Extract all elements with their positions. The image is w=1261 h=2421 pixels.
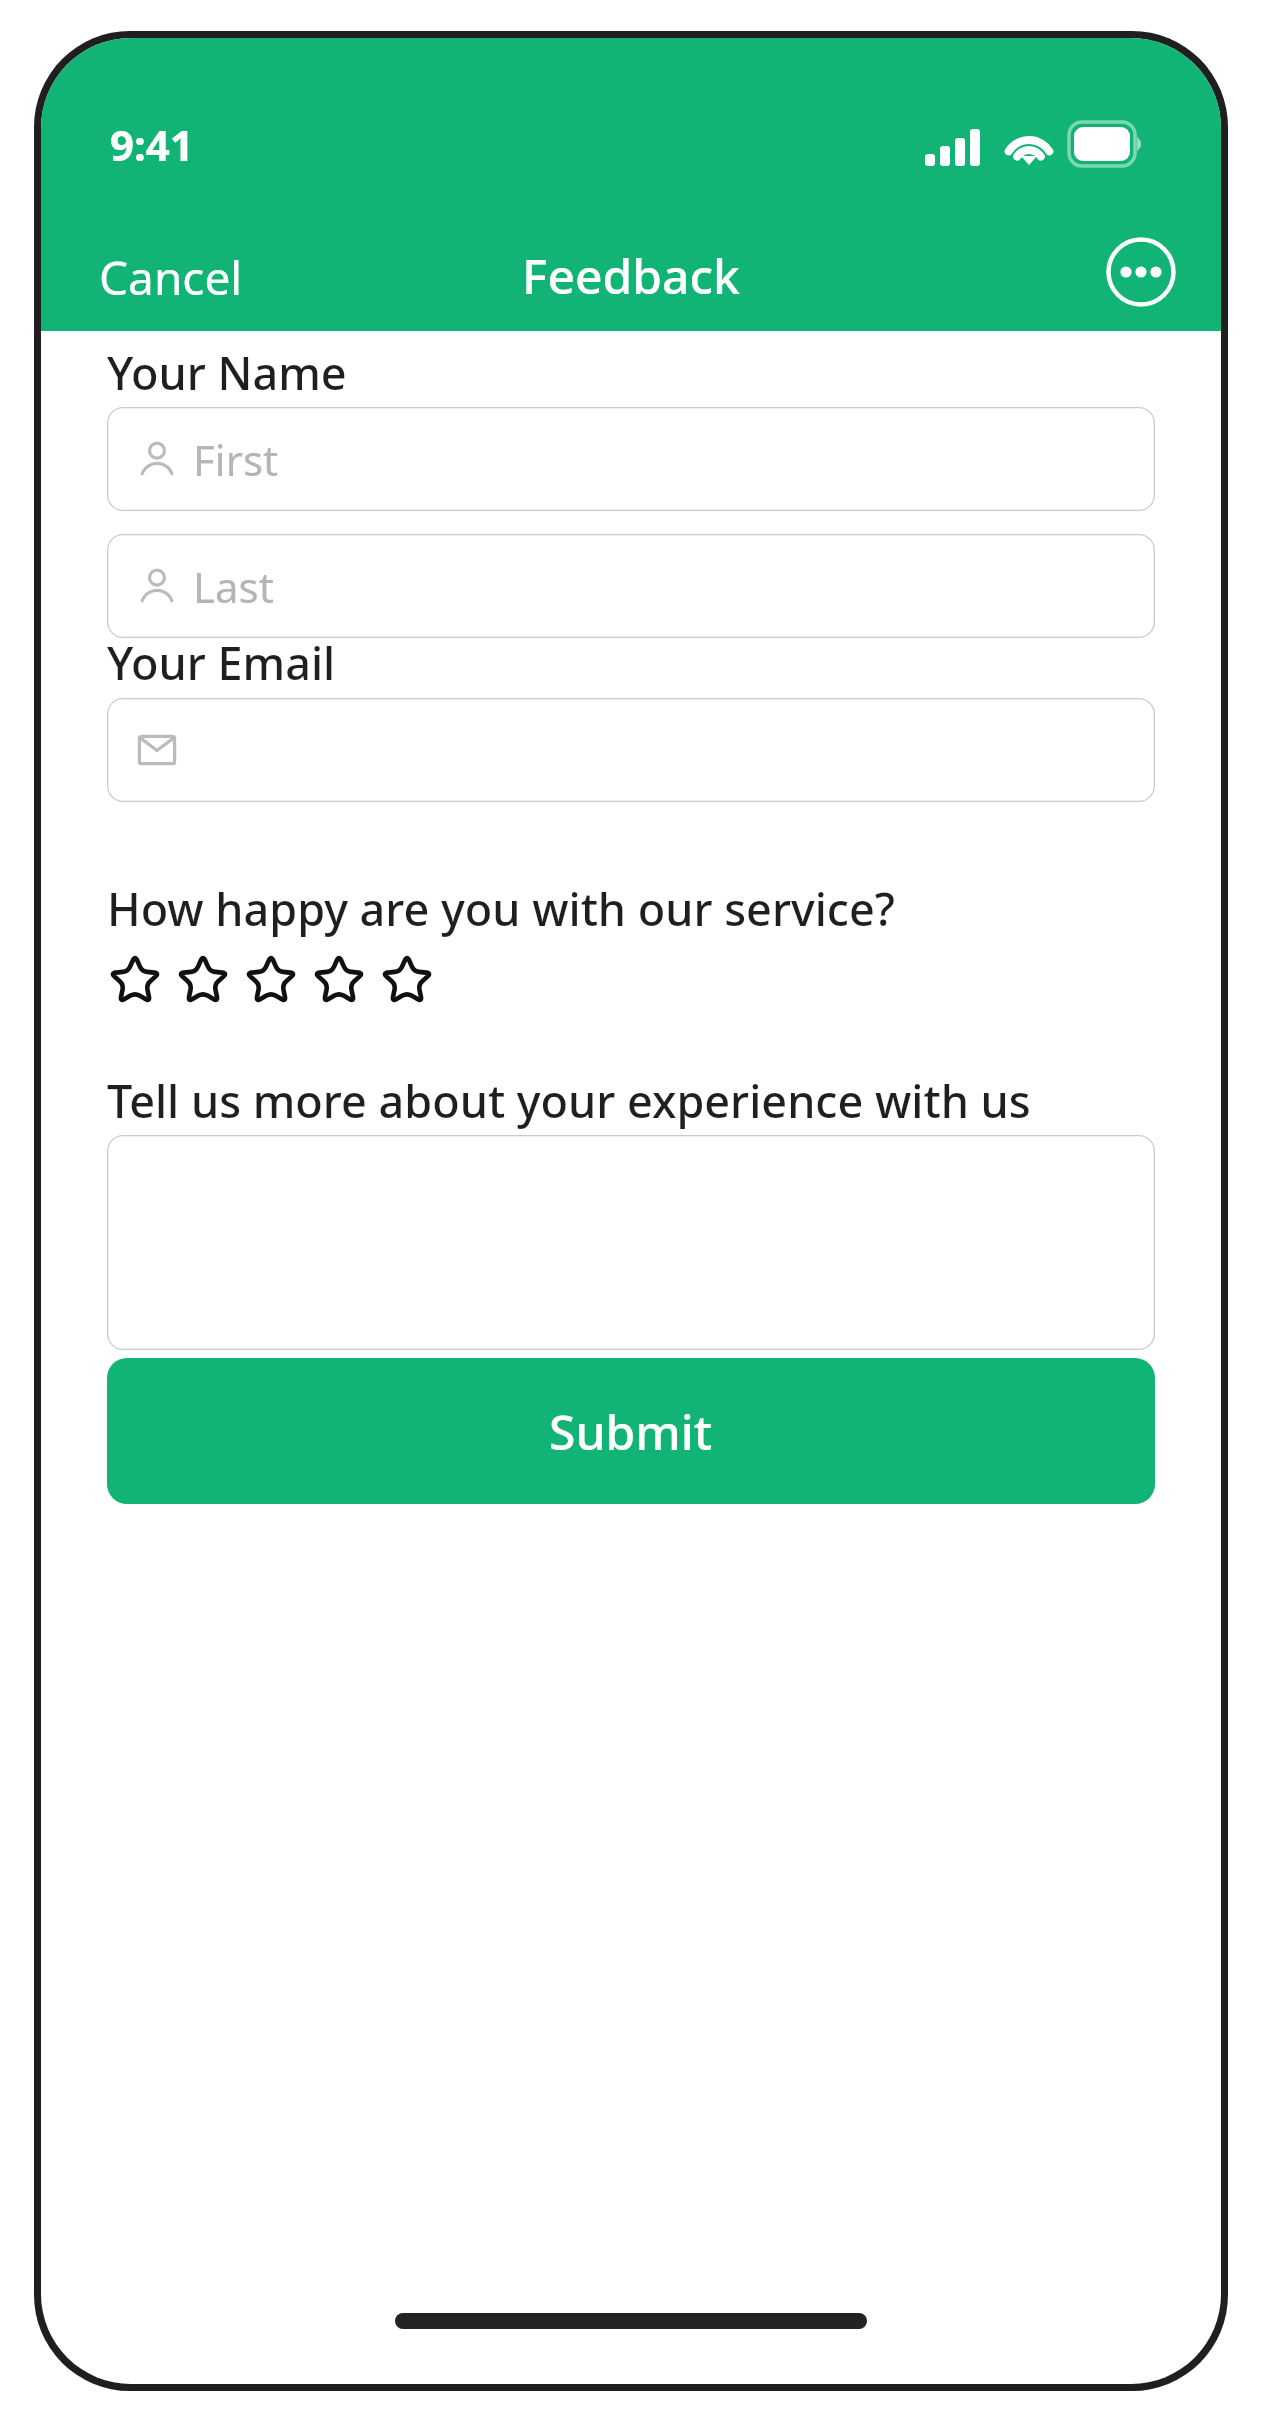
button[interactable]: First [107,407,1155,511]
staticText: Last [193,558,274,615]
button[interactable]: Last [107,534,1155,638]
staticText: 9:41 [110,116,194,173]
button[interactable]: Rate 2 stars [169,946,237,1014]
button[interactable]: Rate 1 stars [101,946,169,1014]
button[interactable]: Cancel [77,236,265,319]
button[interactable]: Rate 3 stars [237,946,305,1014]
button[interactable]: Submit [107,1358,1155,1504]
button[interactable]: Rate 4 stars [305,946,373,1014]
button[interactable]: Rate 5 stars [373,946,441,1014]
staticText: How happy are you with our service? [107,878,895,939]
button[interactable] [107,1135,1155,1350]
button[interactable]: More options [1097,228,1185,316]
button[interactable] [107,698,1155,802]
staticText: First [193,431,279,488]
staticText: Your Email [107,632,336,693]
staticText: Feedback [41,243,1221,308]
staticText: Your Name [107,342,347,403]
staticText: Submit [549,1399,713,1464]
staticText: Cancel [99,246,243,309]
staticText: Tell us more about your experience with … [107,1070,1031,1131]
